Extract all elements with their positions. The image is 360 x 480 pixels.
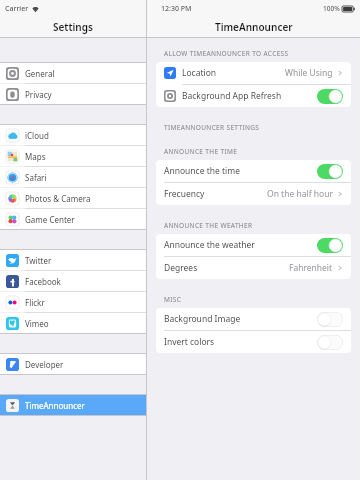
staticText: Settings (53, 20, 93, 34)
button[interactable]: Flickr (0, 292, 146, 312)
staticText: Twitter (25, 255, 52, 266)
staticText: On the half hour (267, 188, 333, 200)
staticText: Carrier (5, 4, 29, 14)
button[interactable]: Developer (0, 354, 146, 374)
staticText: Facebook (25, 276, 61, 287)
staticText: ANNOUNCE THE TIME (164, 147, 238, 156)
staticText: While Using (285, 67, 333, 79)
button[interactable]: Announce the time (317, 164, 343, 179)
button[interactable]: Background App Refresh (317, 89, 343, 104)
staticText: TimeAnnouncer (25, 400, 85, 411)
button[interactable]: Degrees (156, 257, 351, 279)
button[interactable]: iCloud (0, 125, 146, 145)
button[interactable]: Announce the time (156, 160, 351, 182)
staticText: TimeAnnouncer (215, 20, 293, 34)
staticText: TIMEANNOUNCER SETTINGS (164, 123, 260, 132)
button[interactable]: Background Image (156, 308, 351, 330)
staticText: Developer (25, 359, 64, 370)
staticText: 12:30 PM (161, 4, 192, 14)
staticText: Game Center (25, 214, 75, 225)
button[interactable]: Twitter (0, 250, 146, 270)
button[interactable]: Vimeo (0, 313, 146, 333)
staticText: General (25, 68, 55, 79)
button[interactable]: General (0, 63, 146, 83)
staticText: Announce the time (164, 165, 240, 177)
button[interactable]: Location (156, 62, 351, 84)
button[interactable]: Frecuency (156, 183, 351, 205)
button[interactable]: Invert colors (317, 335, 343, 350)
button[interactable]: Background App Refresh (156, 85, 351, 107)
staticText: Announce the weather (164, 239, 255, 251)
staticText: Photos & Camera (25, 193, 91, 204)
button[interactable]: Maps (0, 146, 146, 166)
button[interactable]: TimeAnnouncer (0, 395, 146, 415)
staticText: Flickr (25, 297, 45, 308)
staticText: Background Image (164, 313, 241, 325)
button[interactable]: Invert colors (156, 331, 351, 353)
staticText: Frecuency (164, 188, 205, 200)
staticText: iCloud (25, 130, 49, 141)
button[interactable]: Announce the weather (156, 234, 351, 256)
staticText: Safari (25, 172, 47, 183)
button[interactable]: Background Image (317, 312, 343, 327)
staticText: Privacy (25, 89, 52, 100)
staticText: Vimeo (25, 318, 49, 329)
button[interactable]: Facebook (0, 271, 146, 291)
staticText: Fahrenheit (289, 262, 333, 274)
staticText: Background App Refresh (182, 90, 282, 102)
staticText: Degrees (164, 262, 198, 274)
staticText: Maps (25, 151, 46, 162)
button[interactable]: Privacy (0, 84, 146, 104)
staticText: 100% (323, 4, 340, 13)
button[interactable]: Announce the weather (317, 238, 343, 253)
staticText: MISC (164, 295, 182, 304)
staticText: ALLOW TIMEANNOUNCER TO ACCESS (164, 49, 289, 58)
button[interactable]: Game Center (0, 209, 146, 229)
button[interactable]: Photos & Camera (0, 188, 146, 208)
staticText: Invert colors (164, 336, 215, 348)
button[interactable]: Safari (0, 167, 146, 187)
staticText: Location (182, 67, 217, 79)
staticText: ANNOUNCE THE WEATHER (164, 221, 253, 230)
